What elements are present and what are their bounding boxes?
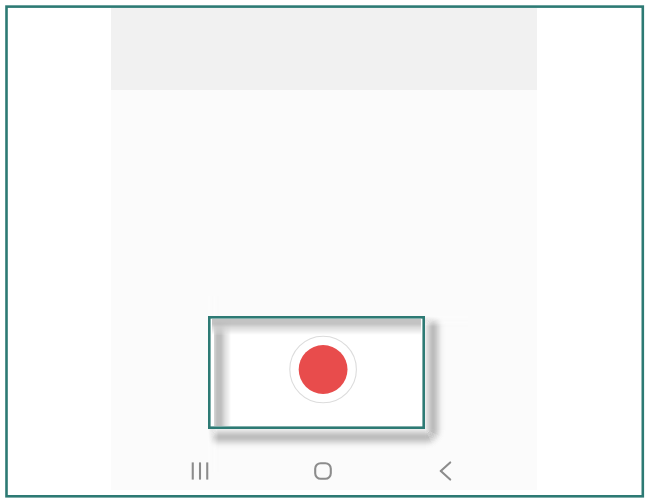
button[interactable]: Home [301,449,345,493]
button[interactable]: Record [208,316,425,429]
button[interactable]: Back [423,449,467,493]
button[interactable]: Recent apps [178,449,222,493]
